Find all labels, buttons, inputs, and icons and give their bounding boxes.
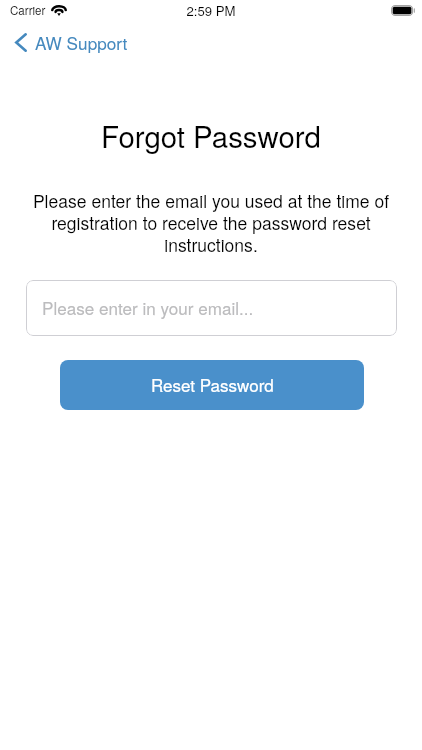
staticText: Please enter the email you used at the t…	[28, 188, 394, 257]
staticText: Forgot Password	[0, 114, 422, 156]
staticText: 2:59 PM	[0, 1, 422, 20]
staticText: Please enter in your email...	[42, 295, 254, 319]
button[interactable]: Reset Password	[60, 360, 364, 410]
button[interactable]: Please enter in your email...	[26, 280, 397, 336]
staticText: Reset Password	[151, 372, 274, 396]
staticText: Carrier	[10, 2, 46, 19]
staticText: AW Support	[35, 30, 128, 55]
other: Back	[15, 33, 27, 52]
button[interactable]: Back	[9, 25, 138, 60]
